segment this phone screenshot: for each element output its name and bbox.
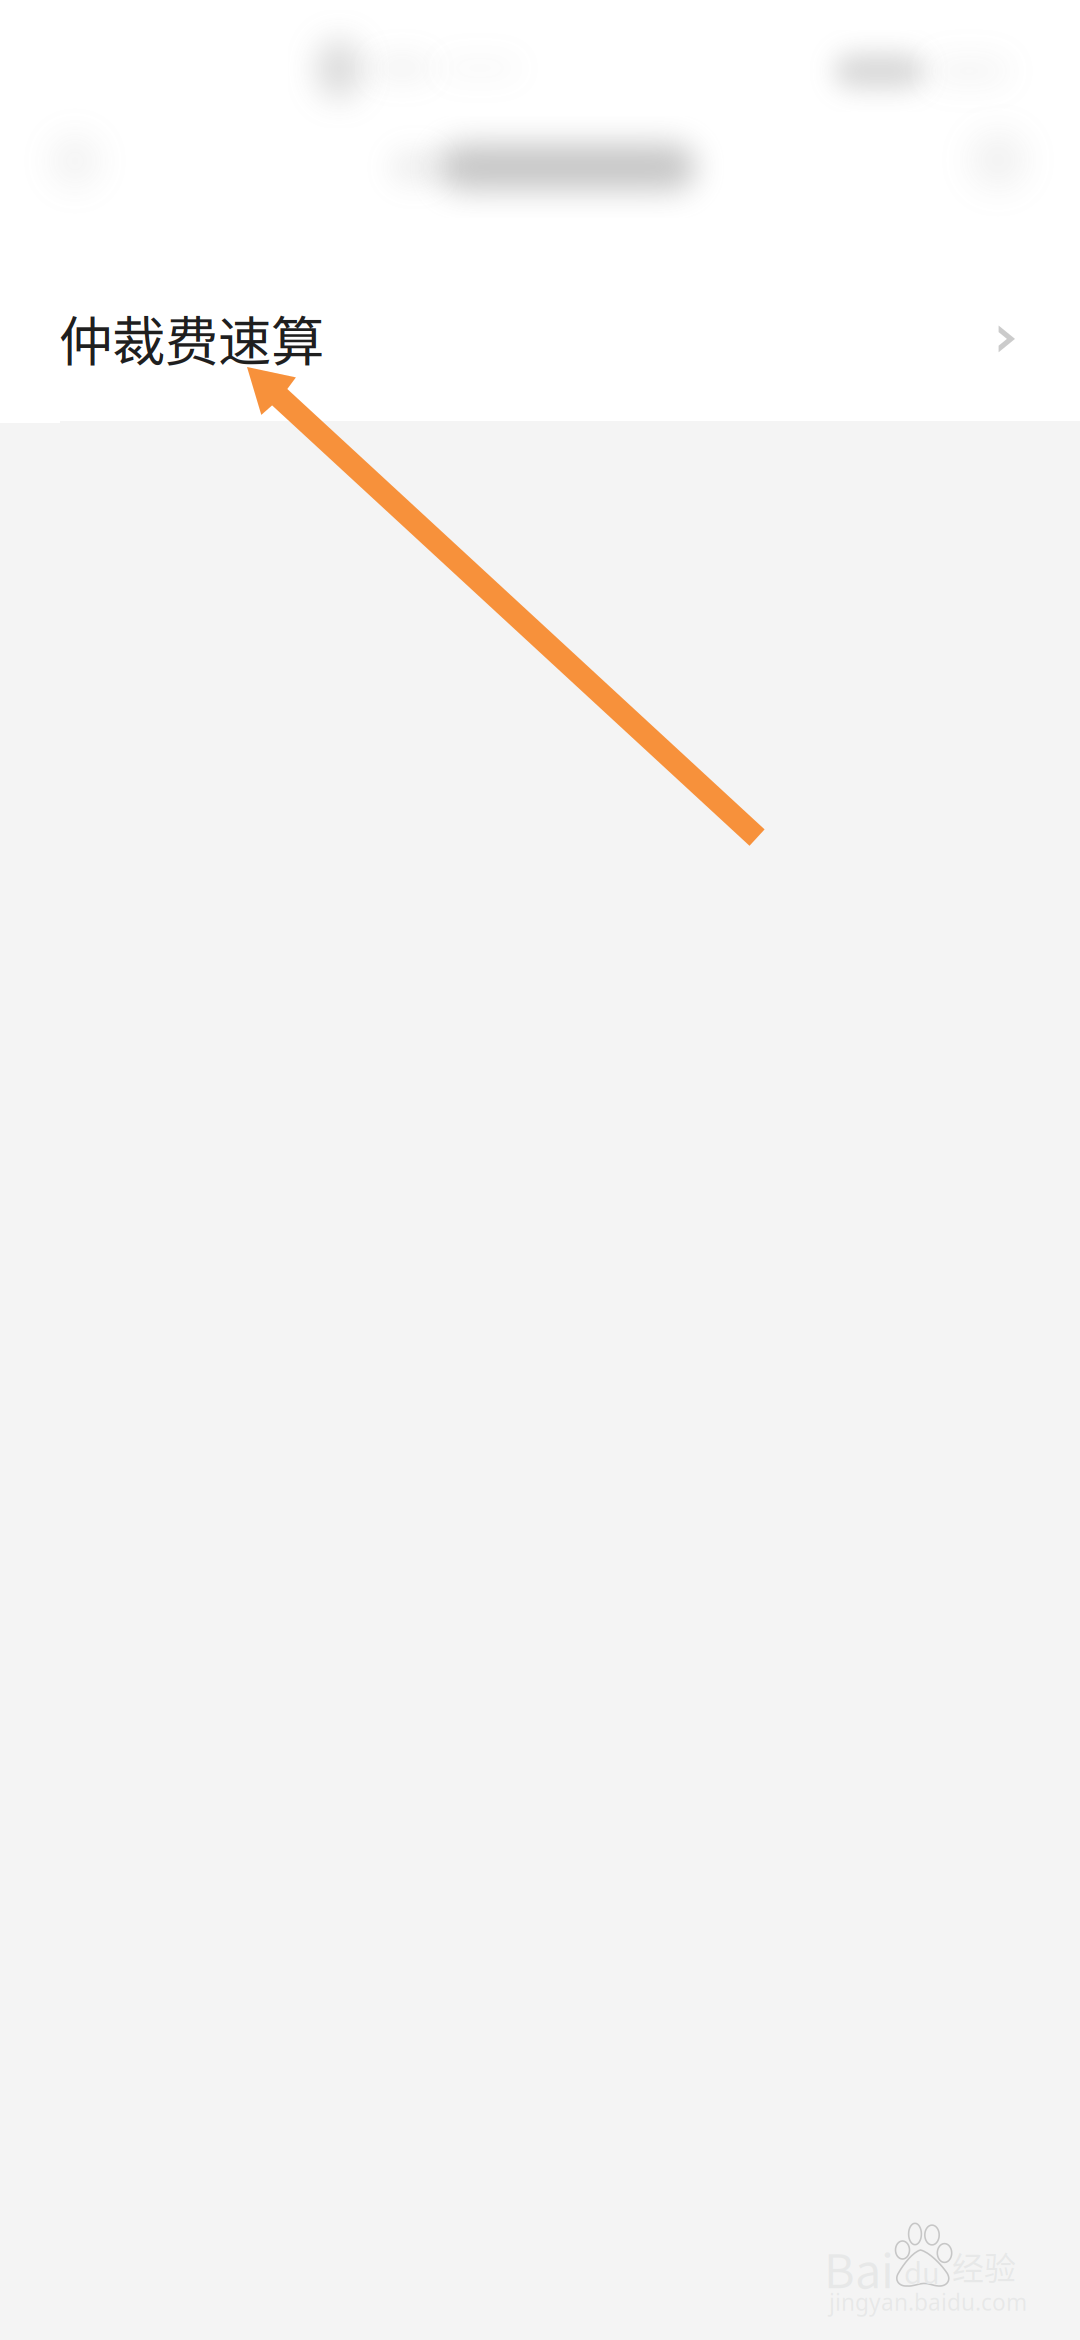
staticText: jingyan.baidu.com [829, 2287, 1027, 2317]
staticText: du [904, 2250, 940, 2292]
staticText: 仲裁费速算 [59, 299, 324, 377]
staticText: 经验 [952, 2243, 1016, 2289]
staticText: Bai [824, 2234, 894, 2302]
button[interactable]: 仲裁费速算 [0, 250, 1080, 421]
